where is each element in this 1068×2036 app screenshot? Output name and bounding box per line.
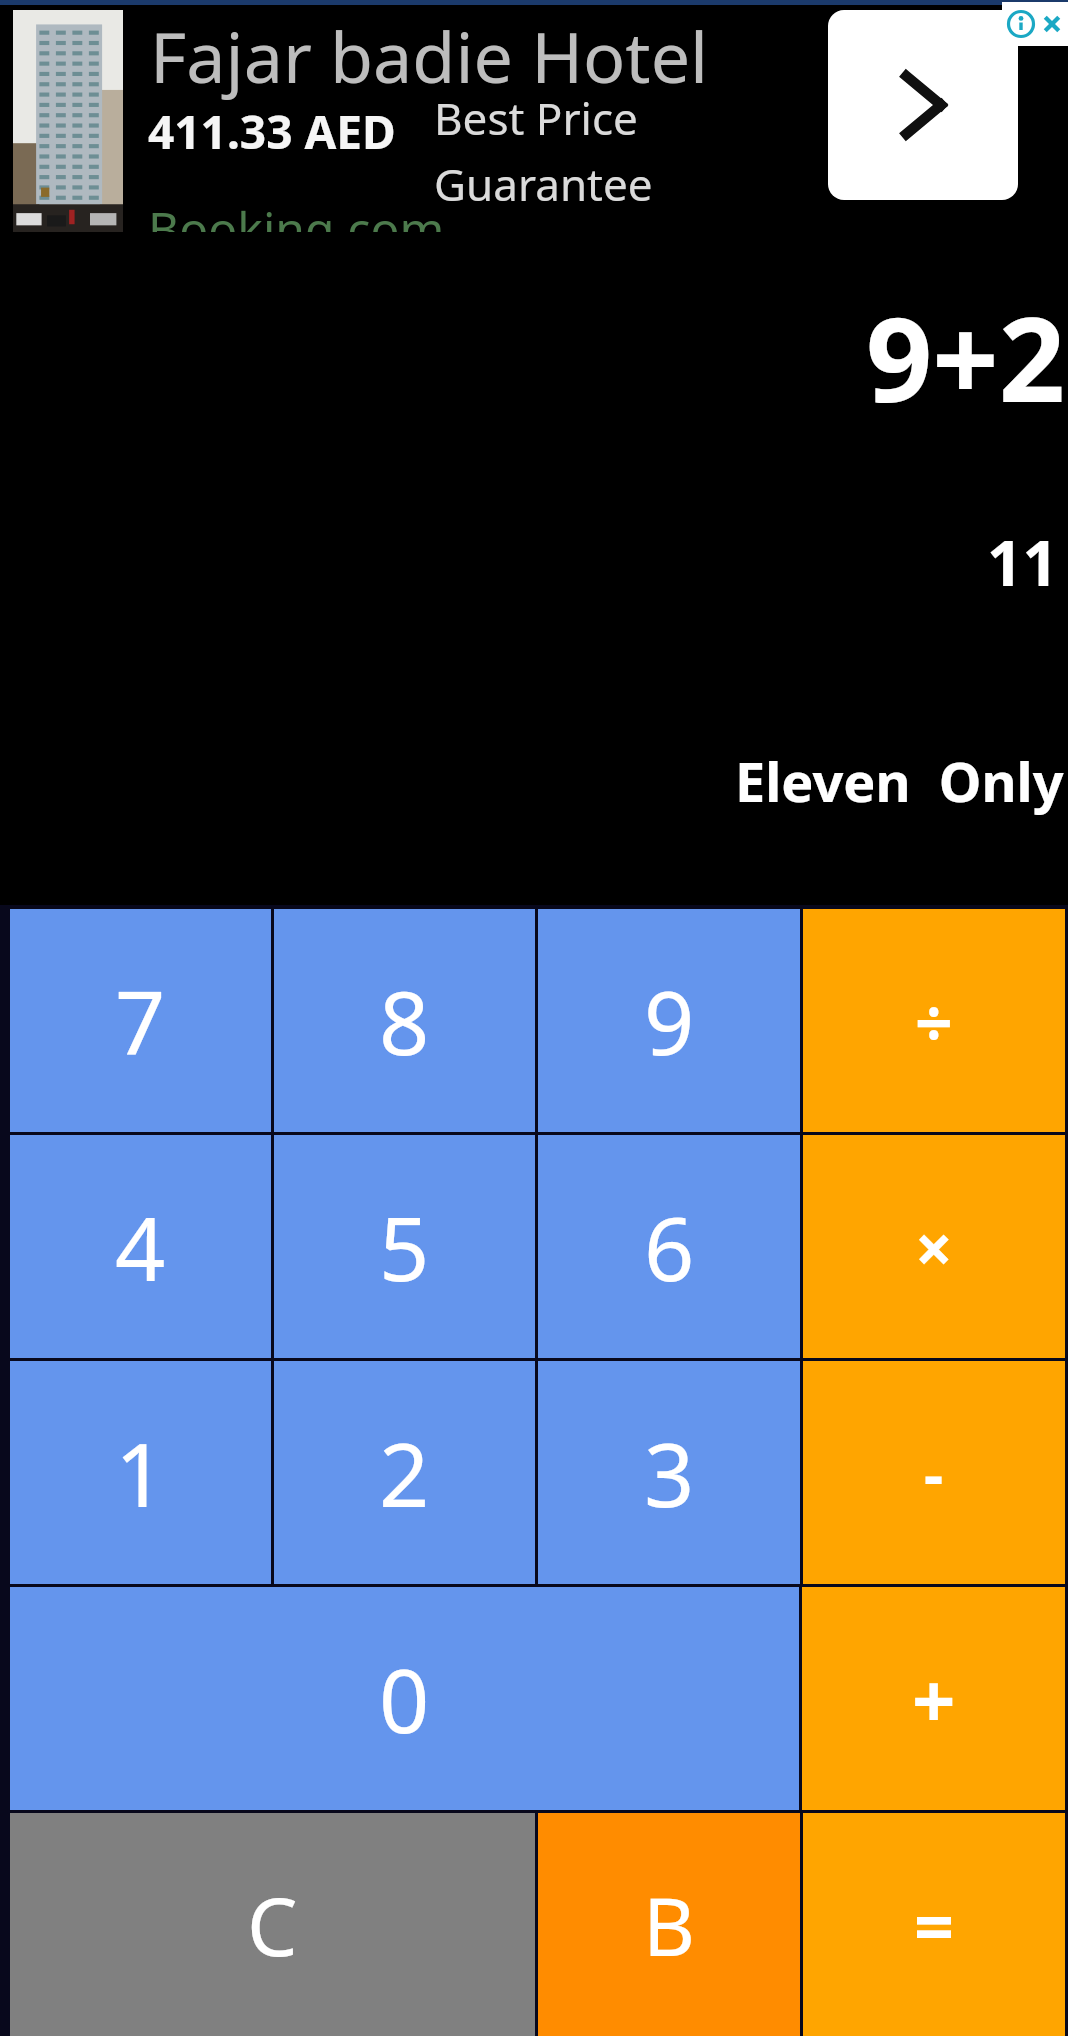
staticText: C [247, 1870, 298, 1979]
staticText: 3 [644, 1413, 695, 1533]
button[interactable]: C [10, 1813, 535, 2036]
staticText: 0 [379, 1639, 430, 1759]
staticText: ÷ [915, 976, 953, 1066]
staticText: - [924, 1432, 944, 1514]
button[interactable]: Open advertisement [828, 10, 1018, 200]
button[interactable]: = [803, 1813, 1065, 2036]
staticText: Best Price [434, 88, 638, 148]
button[interactable]: 1 [10, 1361, 271, 1584]
button[interactable]: ÷ [803, 909, 1065, 1132]
button[interactable]: × [803, 1135, 1065, 1358]
button[interactable]: - [803, 1361, 1065, 1584]
staticText: 9 [644, 961, 695, 1081]
button[interactable]: 2 [274, 1361, 535, 1584]
staticText: 7 [115, 961, 166, 1081]
button[interactable]: 9 [538, 909, 800, 1132]
staticText: 4 [115, 1187, 166, 1307]
button[interactable]: 0 [10, 1587, 799, 1810]
staticText: 5 [379, 1187, 430, 1307]
staticText: 8 [379, 961, 430, 1081]
staticText: Eleven Only [735, 744, 1064, 818]
staticText: 2 [379, 1413, 430, 1533]
button[interactable]: 7 [10, 909, 271, 1132]
button[interactable]: 6 [538, 1135, 800, 1358]
staticText: = [914, 1877, 955, 1972]
staticText: + [912, 1647, 956, 1751]
button[interactable]: 8 [274, 909, 535, 1132]
button[interactable]: Ad choices info [1002, 2, 1068, 46]
button[interactable]: Fajar badie Hotel [0, 0, 1068, 232]
staticText: 6 [644, 1187, 695, 1307]
staticText: 9+2 [866, 278, 1066, 436]
staticText: Booking.com [148, 196, 445, 261]
staticText: 411.33 AED [148, 100, 396, 163]
button[interactable]: 5 [274, 1135, 535, 1358]
button[interactable]: B [538, 1813, 800, 2036]
staticText: Guarantee [434, 154, 653, 214]
button[interactable]: 3 [538, 1361, 800, 1584]
button[interactable]: + [802, 1587, 1065, 1810]
staticText: 11 [987, 520, 1058, 604]
staticText: B [643, 1870, 695, 1979]
staticText: 1 [115, 1413, 166, 1533]
staticText: × [915, 1202, 953, 1292]
staticText: Fajar badie Hotel [150, 8, 709, 103]
button[interactable]: 4 [10, 1135, 271, 1358]
